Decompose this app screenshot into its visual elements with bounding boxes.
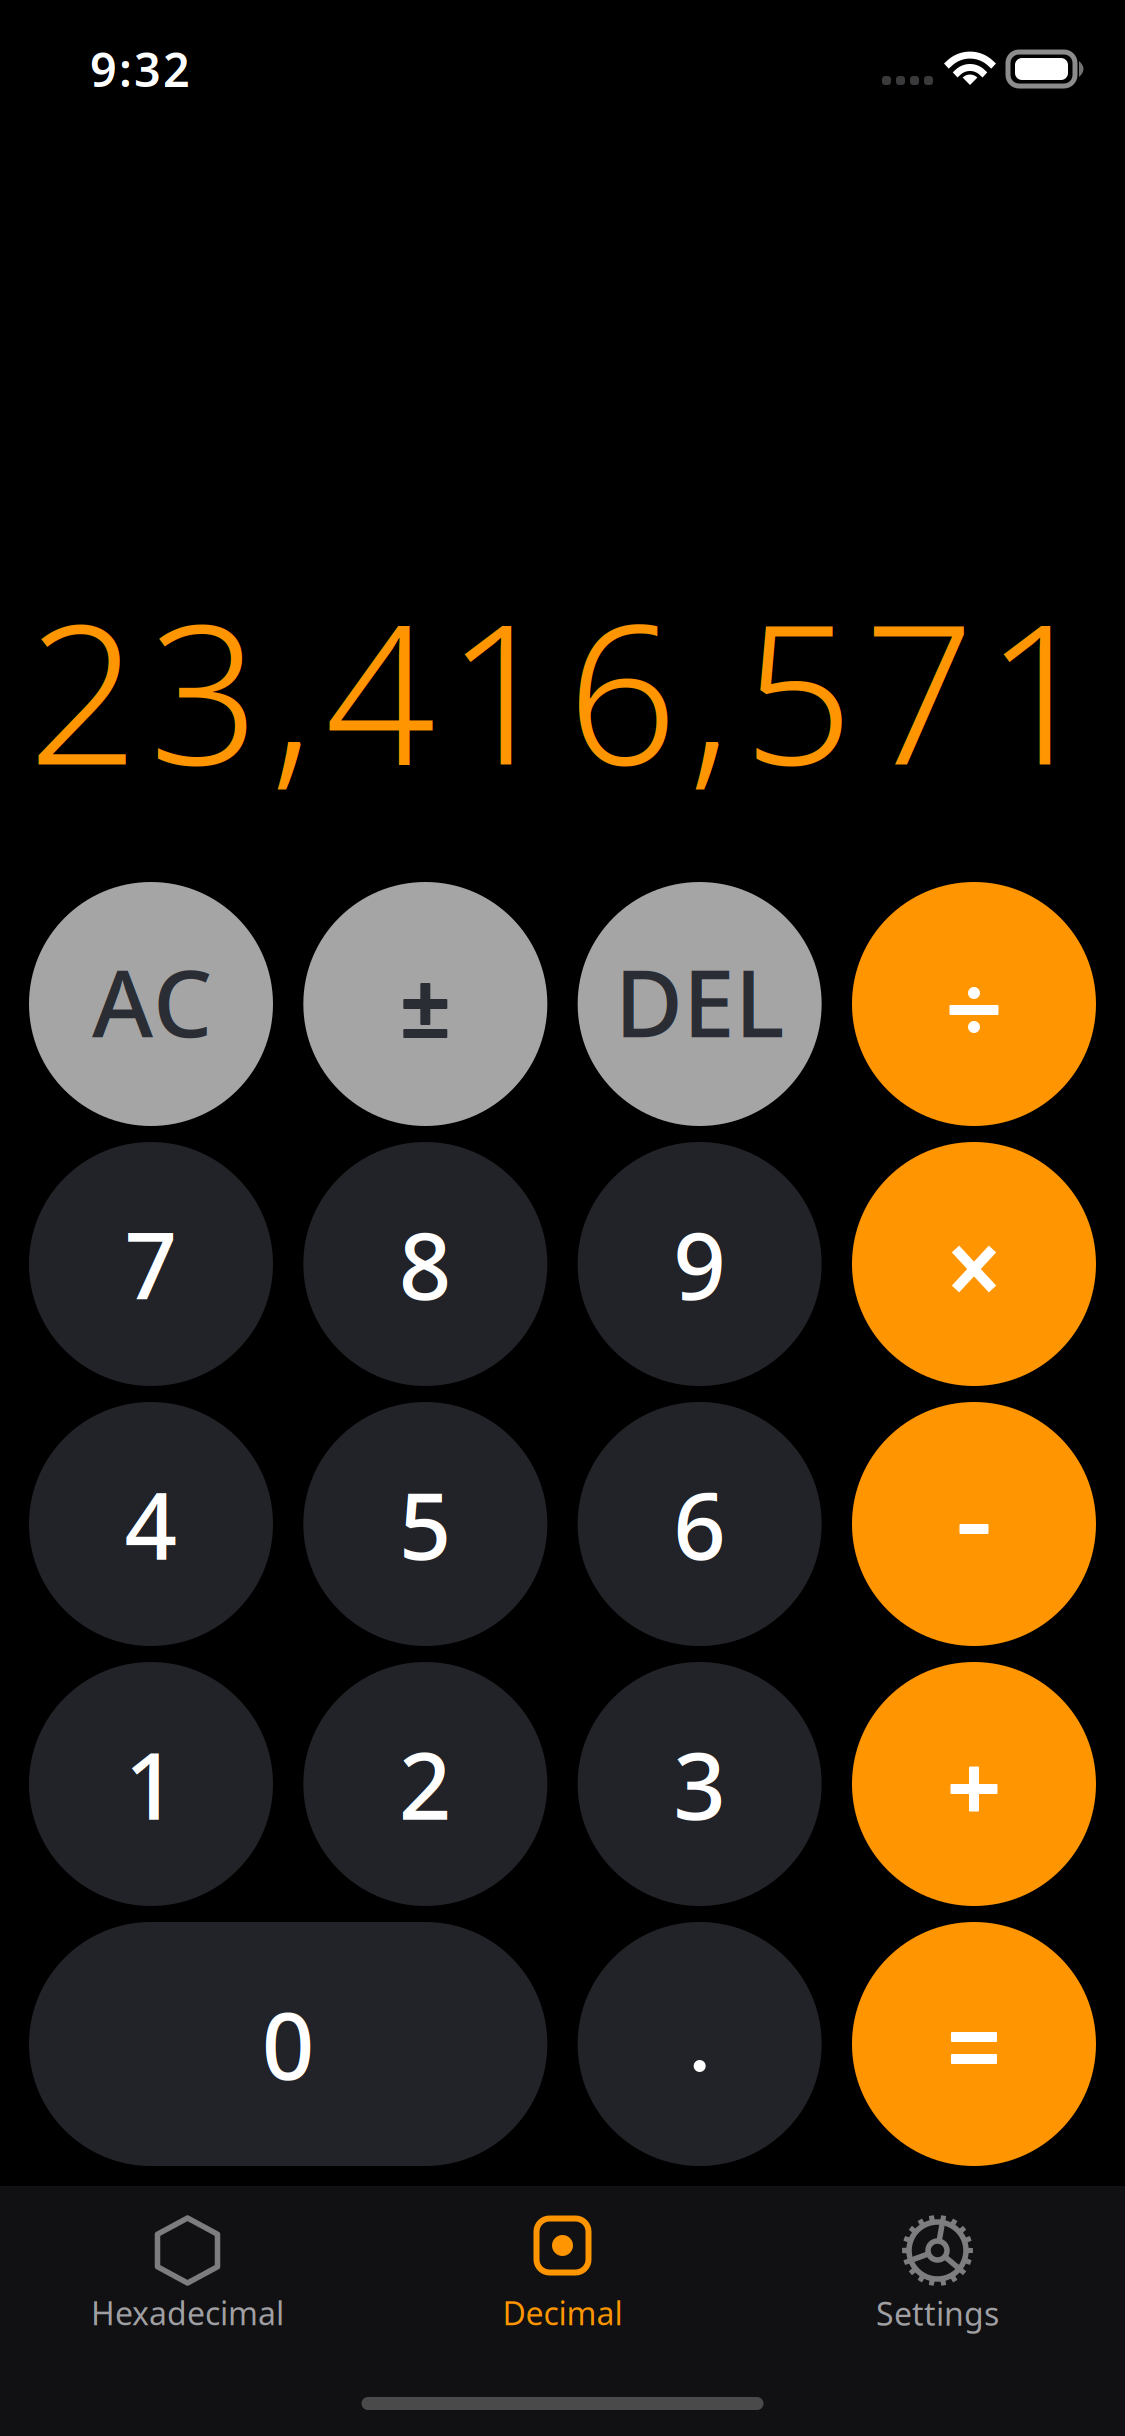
staticText: 8 — [399, 1203, 452, 1325]
button[interactable]: DEL — [578, 882, 822, 1126]
staticText: Settings — [876, 2292, 999, 2334]
staticText: AC — [92, 939, 212, 1063]
button[interactable]: 0 — [29, 1922, 547, 2166]
button[interactable]: Equals — [852, 1922, 1096, 2166]
staticText: 4 — [124, 1463, 177, 1585]
staticText: 1 — [124, 1723, 177, 1845]
staticText: 9 — [673, 1203, 726, 1325]
button[interactable]: Decimal point — [578, 1922, 822, 2166]
staticText: DEL — [615, 939, 785, 1063]
button[interactable]: Multiply — [852, 1142, 1096, 1386]
staticText: 9:32 — [90, 38, 190, 100]
staticText: 3 — [673, 1723, 726, 1845]
staticText: 7 — [124, 1203, 177, 1325]
button[interactable]: 4 — [29, 1402, 273, 1646]
button[interactable]: 7 — [29, 1142, 273, 1386]
button[interactable]: 6 — [578, 1402, 822, 1646]
staticText: Decimal — [502, 2291, 622, 2334]
staticText: 0 — [262, 1983, 315, 2105]
staticText: Hexadecimal — [91, 2291, 284, 2334]
staticText: 23,416,571 — [28, 561, 1095, 818]
button[interactable]: Settings — [750, 2215, 1125, 2334]
button[interactable]: 8 — [303, 1142, 547, 1386]
button[interactable]: 1 — [29, 1662, 273, 1906]
staticText: 5 — [399, 1463, 452, 1585]
button[interactable]: Hexadecimal — [0, 2215, 375, 2334]
button[interactable]: Plus — [852, 1662, 1096, 1906]
staticText: 6 — [673, 1463, 726, 1585]
button[interactable]: 9 — [578, 1142, 822, 1386]
button[interactable]: Minus — [852, 1402, 1096, 1646]
button[interactable]: AC — [29, 882, 273, 1126]
button[interactable]: Decimal — [375, 2215, 750, 2334]
button[interactable]: 5 — [303, 1402, 547, 1646]
button[interactable]: Divide — [852, 882, 1096, 1126]
button[interactable]: 2 — [303, 1662, 547, 1906]
button[interactable]: 3 — [578, 1662, 822, 1906]
staticText: 2 — [399, 1723, 452, 1845]
button[interactable]: Plus minus — [303, 882, 547, 1126]
